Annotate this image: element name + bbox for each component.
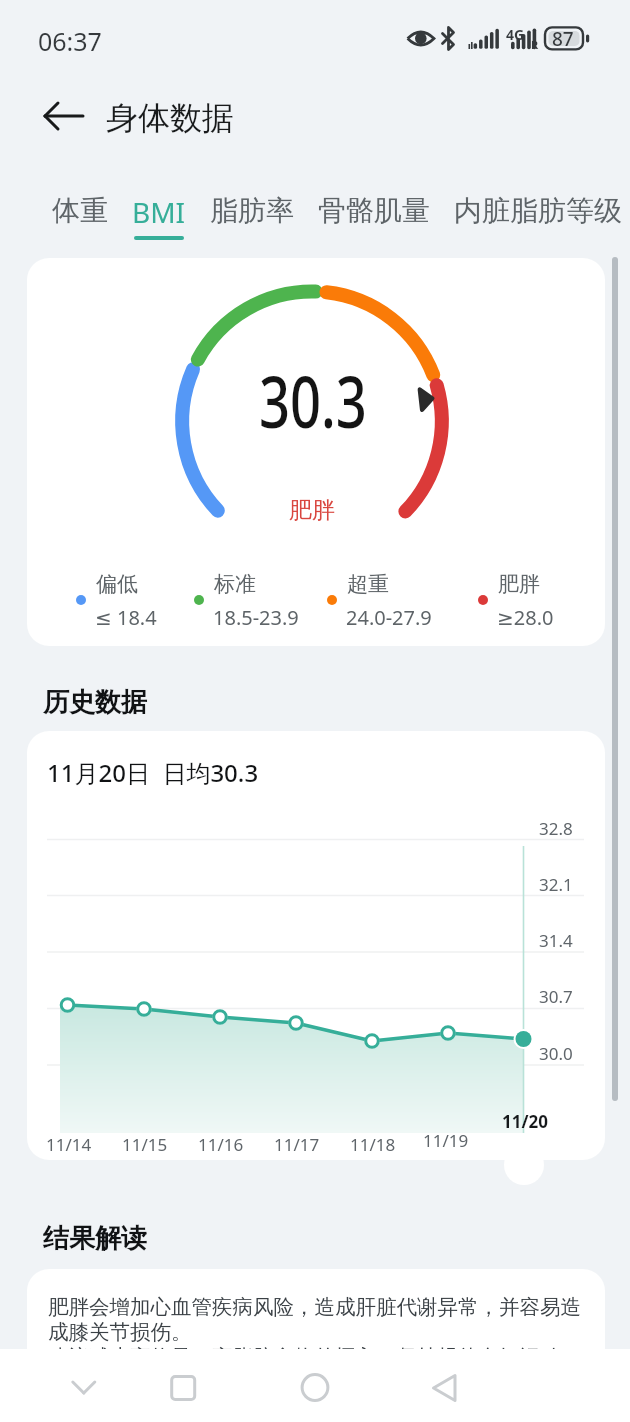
staticText: 30.0	[539, 1042, 573, 1065]
staticText: 30.7	[539, 985, 573, 1008]
staticText: 体重	[52, 193, 108, 228]
button[interactable]: 脂肪率	[198, 193, 306, 228]
button[interactable]: 偏低	[73, 568, 183, 632]
button[interactable]: 肥胖	[475, 568, 585, 632]
staticText: 身体数据	[106, 98, 234, 138]
staticText: 18.5-23.9	[213, 604, 299, 631]
staticText: ≥28.0	[497, 604, 554, 631]
button[interactable]: Expand	[504, 1145, 544, 1185]
staticText: 11/20	[502, 1110, 548, 1133]
staticText: 骨骼肌量	[318, 193, 430, 228]
button[interactable]: 历史数据	[43, 686, 147, 719]
button[interactable]: 内脏脂肪等级	[442, 193, 630, 228]
button[interactable]: Recent apps	[152, 1349, 212, 1409]
staticText: 超重	[347, 571, 389, 597]
staticText: 31.4	[539, 929, 573, 952]
staticText: 内脏脂肪等级	[454, 193, 622, 228]
staticText: 11/15	[122, 1133, 168, 1156]
staticText: ≤ 18.4	[95, 604, 157, 631]
staticText: 87	[552, 26, 574, 52]
staticText: 11/19	[423, 1129, 469, 1152]
staticText: BMI	[132, 193, 186, 231]
button[interactable]: Back	[38, 90, 90, 142]
staticText: 偏低	[96, 571, 138, 597]
button[interactable]: BMI	[120, 193, 198, 240]
staticText: 32.8	[539, 817, 573, 840]
staticText: 32.1	[539, 873, 573, 896]
staticText: R	[531, 37, 539, 52]
button[interactable]: 骨骼肌量	[306, 193, 442, 228]
button[interactable]: 体重	[40, 193, 120, 228]
staticText: 24.0-27.9	[346, 604, 432, 631]
button[interactable]: 标准	[191, 568, 301, 632]
staticText: 肥胖会增加心血管疾病风险，造成肝脏代谢异常，并容易造成膝关节损伤。 建议减少高热…	[48, 1294, 584, 1370]
staticText: 11月20日 日均30.3	[47, 756, 259, 789]
staticText: 30.3	[259, 353, 367, 448]
staticText: 11/17	[274, 1133, 320, 1156]
button[interactable]: Back	[416, 1349, 476, 1409]
button[interactable]: 结果解读	[43, 1222, 147, 1255]
staticText: 11/18	[350, 1133, 396, 1156]
staticText: 肥胖	[289, 496, 335, 525]
staticText: 11/16	[198, 1133, 244, 1156]
staticText: 脂肪率	[210, 193, 294, 228]
staticText: 06:37	[38, 24, 102, 58]
staticText: 肥胖	[498, 571, 540, 597]
staticText: 4G	[506, 25, 525, 44]
button[interactable]: Hide keyboard	[55, 1349, 115, 1409]
staticText: 标准	[214, 571, 256, 597]
button[interactable]: Home	[284, 1349, 344, 1409]
staticText: 11/14	[46, 1133, 92, 1156]
button[interactable]: 超重	[324, 568, 434, 632]
